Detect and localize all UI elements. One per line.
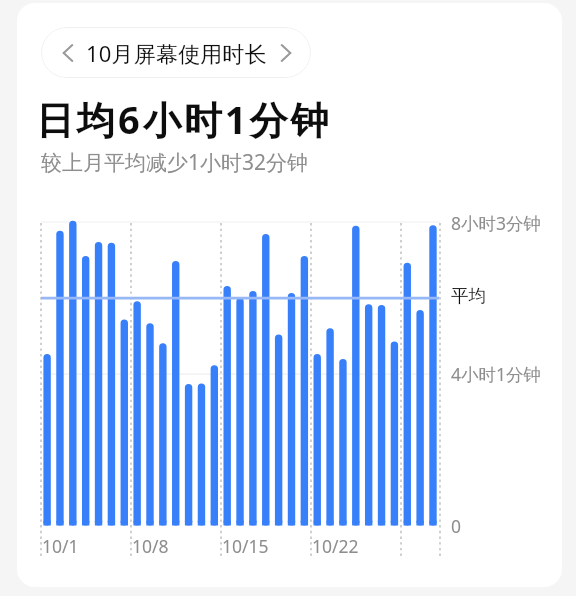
staticText: 10/15 <box>222 534 269 558</box>
staticText: 0 <box>451 514 462 538</box>
staticText: 日均6小时1分钟 <box>36 93 332 145</box>
staticText: 10月屏幕使用时长 <box>86 38 267 68</box>
staticText: 4小时1分钟 <box>451 362 542 386</box>
staticText: 10/8 <box>132 534 169 558</box>
button[interactable]: Previous month <box>41 27 311 78</box>
staticText: 8小时3分钟 <box>451 211 542 235</box>
staticText: 10/22 <box>312 534 359 558</box>
staticText: 较上月平均减少1小时32分钟 <box>41 148 309 177</box>
staticText: 平均 <box>451 285 486 307</box>
button[interactable]: Previous month <box>47 27 89 78</box>
staticText: 10/1 <box>42 534 79 558</box>
button[interactable]: Next month <box>265 27 307 78</box>
